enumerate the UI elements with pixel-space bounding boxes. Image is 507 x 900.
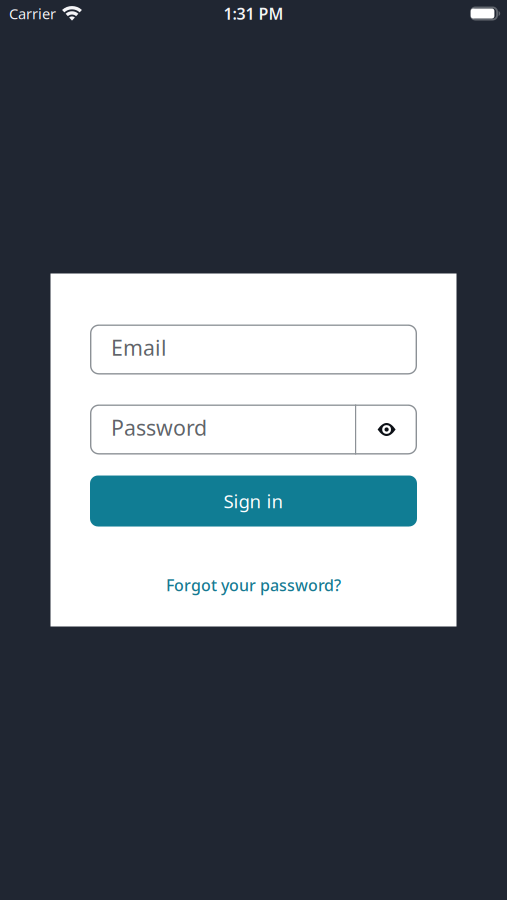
button[interactable]: Email xyxy=(90,324,417,374)
staticText: 1:31 PM xyxy=(223,3,283,24)
button[interactable]: Sign in xyxy=(90,475,417,526)
staticText: Sign in xyxy=(223,489,283,513)
staticText: Password xyxy=(111,413,207,442)
button[interactable]: Show password xyxy=(356,404,417,454)
button[interactable]: Password xyxy=(90,404,355,454)
staticText: Forgot your password? xyxy=(166,574,341,596)
staticText: Carrier xyxy=(9,4,56,23)
button[interactable]: Forgot your password? xyxy=(166,574,341,596)
staticText: Email xyxy=(111,333,167,362)
